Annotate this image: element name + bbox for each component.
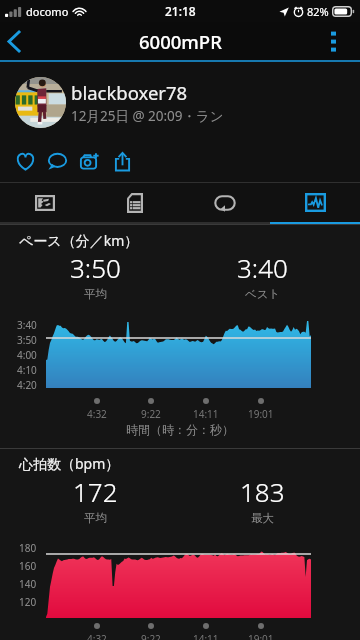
staticText: blackboxer78: [71, 80, 188, 105]
staticText: 3:50: [70, 250, 121, 285]
button[interactable]: Back: [0, 22, 38, 60]
button[interactable]: Share: [109, 143, 135, 179]
staticText: 心拍数（bpm）: [19, 454, 120, 473]
staticText: 19:01: [248, 407, 274, 421]
staticText: 183: [240, 474, 285, 509]
staticText: 6000mPR: [139, 29, 222, 54]
staticText: 平均: [84, 287, 107, 301]
staticText: 82%: [307, 4, 329, 19]
staticText: 9:22: [141, 632, 161, 640]
button[interactable]: Map: [0, 183, 90, 222]
button[interactable]: Charts: [270, 183, 360, 222]
staticText: 160: [19, 559, 37, 573]
staticText: 180: [19, 541, 37, 555]
staticText: 時間（時：分：秒）: [0, 422, 360, 437]
staticText: 19:01: [248, 632, 274, 640]
staticText: docomo: [26, 4, 69, 19]
button[interactable]: Details: [90, 183, 180, 222]
staticText: 12月25日 @ 20:09・ラン: [71, 107, 224, 125]
staticText: 4:00: [17, 348, 37, 362]
staticText: 平均: [84, 511, 107, 525]
button[interactable]: Laps: [180, 183, 270, 222]
button[interactable]: Like: [12, 143, 38, 179]
button[interactable]: Comment: [44, 143, 70, 179]
button[interactable]: More options: [330, 22, 360, 60]
staticText: 4:20: [17, 378, 37, 392]
staticText: 120: [19, 595, 37, 609]
staticText: 14:11: [193, 632, 219, 640]
staticText: 9:22: [141, 407, 161, 421]
staticText: 3:40: [237, 250, 288, 285]
staticText: 14:11: [193, 407, 219, 421]
staticText: 4:32: [87, 632, 107, 640]
button[interactable]: blackboxer78: [0, 62, 360, 142]
staticText: ペース（分／km）: [19, 231, 139, 250]
staticText: ベスト: [245, 287, 281, 301]
staticText: 21:18: [165, 3, 196, 19]
button[interactable]: Add photo: [76, 143, 102, 179]
staticText: 3:50: [17, 333, 37, 347]
staticText: 最大: [251, 511, 274, 525]
staticText: 4:10: [17, 363, 37, 377]
staticText: 4:32: [87, 407, 107, 421]
staticText: 3:40: [17, 318, 37, 332]
staticText: 140: [19, 577, 37, 591]
staticText: 172: [73, 474, 118, 509]
